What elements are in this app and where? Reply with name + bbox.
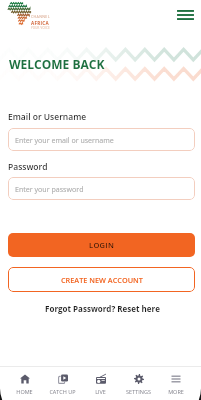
staticText: CREATE NEW ACCOUNT xyxy=(61,275,143,285)
staticText: WELCOME BACK xyxy=(9,56,105,72)
staticText: LIVE xyxy=(95,388,106,395)
button[interactable]: MORE xyxy=(157,366,195,400)
button[interactable]: Forgot Password? Reset here xyxy=(2,303,201,317)
button[interactable]: CREATE NEW ACCOUNT xyxy=(8,267,195,292)
staticText: CHANNEL xyxy=(31,14,50,19)
staticText: HOME xyxy=(16,388,33,395)
staticText: Enter your email or username xyxy=(15,135,114,145)
button[interactable]: Enter your password xyxy=(8,177,195,200)
staticText: MORE xyxy=(168,388,184,395)
staticText: SETTINGS xyxy=(126,388,151,395)
staticText: Enter your password xyxy=(15,184,84,194)
button[interactable]: Open navigation menu xyxy=(173,3,197,27)
button[interactable]: HOME xyxy=(5,366,43,400)
staticText: Email or Username xyxy=(8,111,87,123)
staticText: LOGIN xyxy=(89,240,115,250)
button[interactable]: CHANNEL xyxy=(6,1,54,27)
staticText: YOUR VOICE xyxy=(31,26,50,30)
staticText: Password xyxy=(8,161,48,173)
button[interactable]: CATCH UP xyxy=(43,366,81,400)
button[interactable]: LIVE xyxy=(81,366,119,400)
staticText: Forgot Password? Reset here xyxy=(2,303,201,314)
staticText: CATCH UP xyxy=(49,388,76,395)
staticText: AFRICA xyxy=(31,20,49,26)
button[interactable]: LOGIN xyxy=(8,233,195,257)
button[interactable]: Enter your email or username xyxy=(8,128,195,151)
button[interactable]: SETTINGS xyxy=(119,366,157,400)
